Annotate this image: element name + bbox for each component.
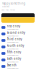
button[interactable]: Fifth entry [0, 50, 36, 57]
staticText: Three [10, 9, 15, 11]
staticText: supporting copy [7, 42, 19, 43]
staticText: First entry [7, 24, 20, 28]
button[interactable]: Third entry [0, 37, 36, 44]
staticText: another line [2, 6, 10, 7]
button[interactable]: Sixth entry [0, 57, 36, 63]
staticText: supporting copy [7, 55, 19, 56]
staticText: supporting copy [7, 48, 19, 50]
button[interactable]: Second entry [0, 31, 36, 37]
staticText: Happy something [2, 2, 26, 5]
button[interactable]: Fourth entry [0, 44, 36, 50]
staticText: supporting copy [7, 61, 19, 63]
staticText: Third entry [7, 37, 22, 41]
staticText: One [2, 9, 5, 11]
button[interactable]: First entry [0, 24, 36, 31]
staticText: supporting copy [7, 29, 19, 30]
staticText: Two [6, 9, 9, 11]
button[interactable]: Seventh [0, 63, 36, 70]
staticText: Fourth entry [7, 44, 24, 47]
staticText: supporting copy [7, 68, 19, 69]
staticText: Seventh [7, 63, 17, 67]
staticText: Sixth entry [7, 57, 21, 60]
staticText: supporting copy [7, 35, 19, 37]
staticText: Second entry [7, 31, 25, 34]
staticText: Fifth entry [7, 50, 21, 54]
